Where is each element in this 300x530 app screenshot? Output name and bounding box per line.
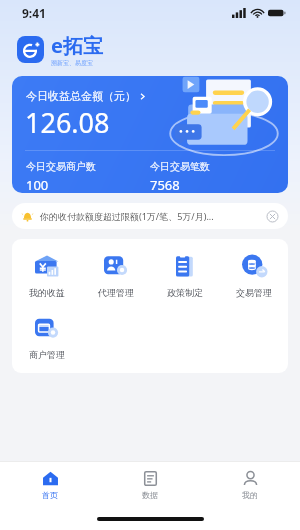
button[interactable]: 我的	[200, 462, 300, 508]
staticText: 交易管理	[236, 287, 272, 298]
staticText: 你的收付款额度超过限额(1万/笔、5万/月)...	[40, 210, 261, 222]
staticText: 今日收益总金额（元）	[26, 89, 136, 103]
button[interactable]: 交易管理	[219, 250, 288, 300]
button[interactable]: 政策制定	[150, 250, 219, 300]
staticText: 100	[26, 176, 49, 193]
staticText: 今日交易笔数	[150, 160, 210, 173]
staticText: 商户管理	[29, 349, 65, 360]
staticText: 7568	[150, 176, 180, 193]
staticText: 首页	[42, 490, 58, 500]
button[interactable]: 代理管理	[81, 250, 150, 300]
staticText: 我的收益	[29, 287, 65, 298]
button[interactable]: 数据	[100, 462, 200, 508]
staticText: 溯新宝、易度宝	[51, 59, 93, 67]
button[interactable]: 首页	[0, 462, 100, 508]
button[interactable]: Dismiss notice	[265, 209, 279, 223]
staticText: 代理管理	[98, 287, 134, 298]
staticText: 9:41	[22, 5, 46, 21]
staticText: 126.08	[25, 104, 110, 141]
button[interactable]: 你的收付款额度超过限额(1万/笔、5万/月)...	[12, 203, 288, 229]
staticText: 今日交易商户数	[26, 160, 96, 173]
button[interactable]: 今日收益总金额（元）	[26, 89, 147, 103]
button[interactable]: 商户管理	[12, 312, 81, 362]
staticText: 数据	[142, 490, 158, 500]
staticText: 我的	[242, 490, 258, 500]
button[interactable]: 我的收益	[12, 250, 81, 300]
staticText: 政策制定	[167, 287, 203, 298]
staticText: e拓宝	[51, 32, 103, 59]
